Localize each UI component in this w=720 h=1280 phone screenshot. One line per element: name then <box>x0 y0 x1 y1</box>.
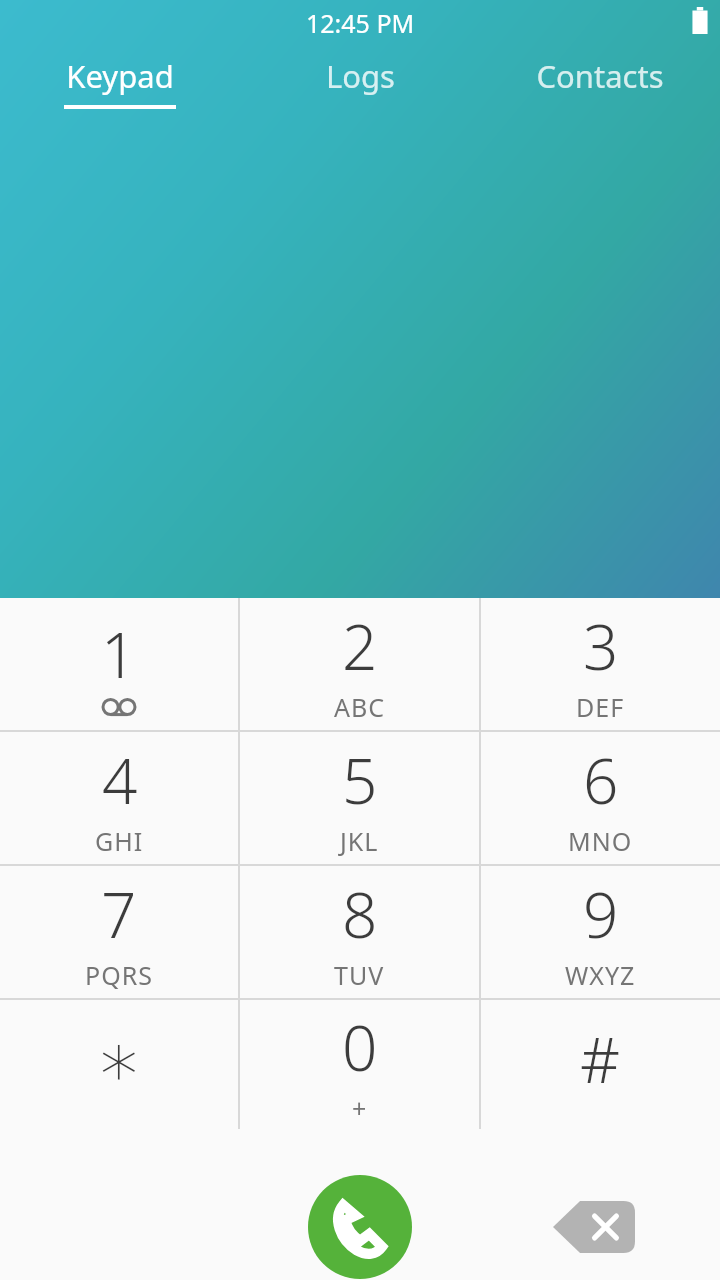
staticText: + <box>352 1091 368 1125</box>
staticText: DEF <box>576 690 625 724</box>
button[interactable]: # <box>481 1000 720 1129</box>
staticText: 4 <box>102 738 138 822</box>
staticText: ABC <box>334 690 386 724</box>
button[interactable]: 9 <box>481 866 720 998</box>
button[interactable]: Logs <box>240 55 480 97</box>
button[interactable]: 1 <box>0 598 238 730</box>
button[interactable]: Keypad <box>0 55 240 109</box>
staticText: 3 <box>583 604 619 688</box>
button[interactable]: 7 <box>0 866 238 998</box>
button[interactable]: 2 <box>240 598 479 730</box>
button[interactable]: ∗ <box>0 1000 238 1129</box>
button[interactable]: Call <box>308 1175 412 1279</box>
staticText: 9 <box>583 872 619 956</box>
staticText: 0 <box>342 1005 378 1089</box>
staticText: 1 <box>101 612 137 696</box>
staticText: Logs <box>326 55 395 97</box>
staticText: WXYZ <box>565 958 636 992</box>
staticText: ∗ <box>95 1015 143 1103</box>
staticText: 2 <box>342 604 378 688</box>
staticText: Contacts <box>536 55 664 97</box>
staticText: JKL <box>340 824 379 858</box>
staticText: # <box>580 1017 621 1101</box>
staticText: TUV <box>334 958 385 992</box>
button[interactable]: 4 <box>0 732 238 864</box>
other: Battery <box>691 7 709 34</box>
button[interactable]: 3 <box>481 598 720 730</box>
staticText: PQRS <box>85 958 153 992</box>
staticText: GHI <box>95 824 144 858</box>
staticText: 5 <box>342 738 378 822</box>
staticText: 6 <box>583 738 619 822</box>
staticText: MNO <box>568 824 633 858</box>
button[interactable]: 5 <box>240 732 479 864</box>
staticText: 12:45 PM <box>306 6 415 40</box>
button[interactable]: Contacts <box>480 55 720 97</box>
staticText: Keypad <box>66 55 174 97</box>
staticText: 7 <box>101 872 137 956</box>
button[interactable]: 6 <box>481 732 720 864</box>
button[interactable]: 8 <box>240 866 479 998</box>
button[interactable]: Backspace <box>553 1201 635 1253</box>
button[interactable]: 0 <box>240 1000 479 1129</box>
staticText: 8 <box>342 872 378 956</box>
